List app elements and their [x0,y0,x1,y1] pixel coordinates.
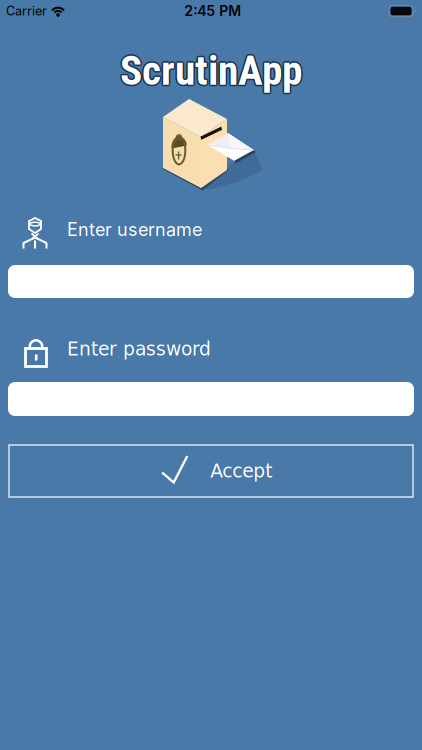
staticText: Enter username [67,219,202,240]
staticText: ScrutinApp [119,47,301,96]
staticText: ScrutinApp [121,46,303,95]
staticText: ScrutinApp [120,45,302,93]
staticText: Accept [210,460,272,482]
staticText: Enter password [67,338,211,360]
staticText: ScrutinApp [120,48,302,96]
staticText: ScrutinApp [121,45,303,94]
staticText: Carrier [6,3,47,19]
button[interactable]: Enter password [8,382,414,416]
staticText: ScrutinApp [119,46,301,95]
staticText: ScrutinApp [121,47,303,96]
staticText: ScrutinApp [120,46,302,95]
staticText: ScrutinApp [119,45,301,94]
staticText: 2:45 PM [184,2,241,19]
button[interactable]: Accept [9,445,413,497]
button[interactable]: Enter username [8,265,414,298]
